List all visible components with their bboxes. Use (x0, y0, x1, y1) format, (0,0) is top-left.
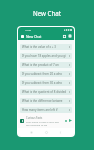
button[interactable]: What is the product of 7 an (20, 62, 72, 68)
staticText: New Chat (33, 9, 61, 17)
staticText: What is the difference betwee (22, 99, 63, 103)
staticText: How many items are left if (22, 108, 58, 112)
button[interactable]: If you have 18 apples and you gi (20, 53, 72, 59)
button[interactable]: If you subtract from 30 a who (20, 80, 72, 86)
staticText: What is the product of 7 an (22, 63, 59, 67)
staticText: What is the value of x + 3 (22, 45, 56, 49)
button[interactable]: Send (69, 119, 72, 122)
staticText: your name is now a story abo (26, 120, 60, 123)
staticText: If you subtract from 20 a who (22, 72, 62, 76)
staticText: If you have 18 apples and you gi (22, 54, 66, 58)
button[interactable]: If you subtract from 20 a who (20, 71, 72, 77)
staticText: Curious Facts (26, 116, 43, 120)
staticText: If you subtract from 30 a who (22, 81, 62, 85)
button[interactable]: Recents (30, 131, 33, 134)
staticText: New Chat (26, 34, 42, 39)
staticText: 10:30 (25, 28, 32, 31)
button[interactable]: Back (59, 131, 62, 134)
button[interactable]: Menu (21, 35, 24, 38)
staticText: the meaning of life (26, 123, 48, 126)
button[interactable]: Settings (68, 34, 72, 38)
button[interactable]: Chats (63, 35, 66, 38)
staticText: What is the quotient of 8 divided (22, 90, 67, 94)
button[interactable]: Home (45, 131, 48, 134)
button[interactable]: What is the difference betwee (20, 98, 72, 104)
button[interactable]: What is the value of x + 3 (20, 44, 72, 50)
button[interactable]: How many items are left if (20, 107, 72, 113)
button[interactable]: What is the quotient of 8 divided (20, 89, 72, 95)
